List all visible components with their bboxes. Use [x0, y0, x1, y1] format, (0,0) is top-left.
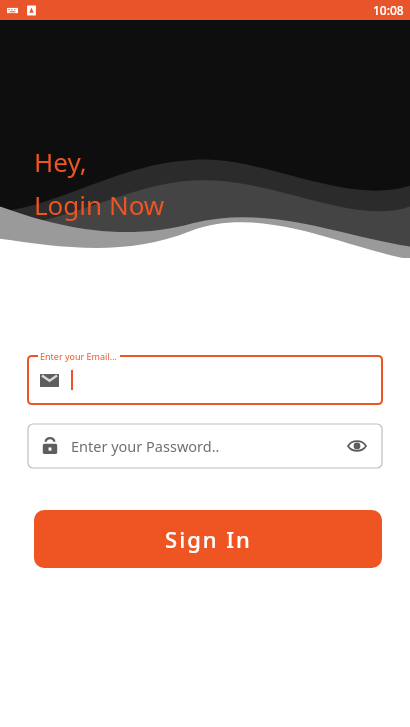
button[interactable]: Show password — [346, 435, 368, 457]
button[interactable]: Sign In — [34, 510, 382, 568]
staticText: Login Now — [34, 187, 165, 222]
button[interactable]: Enter your Password.. — [28, 424, 382, 468]
staticText: Enter your Email... — [40, 350, 117, 362]
button[interactable]: Enter your Email... — [28, 350, 382, 404]
staticText: Hey, — [34, 144, 87, 179]
staticText: Sign In — [165, 524, 252, 554]
staticText: 10:08 — [373, 2, 404, 18]
staticText: Enter your Password.. — [71, 436, 220, 456]
